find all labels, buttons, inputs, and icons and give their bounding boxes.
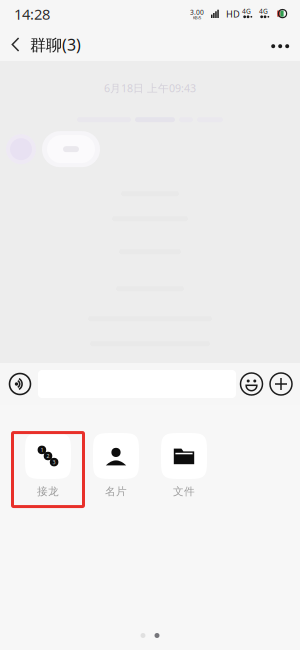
button[interactable]: Voice message: [2, 363, 38, 405]
staticText: 接龙: [37, 485, 59, 498]
staticText: 2: [46, 452, 49, 460]
button[interactable]: More: [267, 363, 295, 405]
button[interactable]: More options: [258, 28, 300, 61]
button[interactable]: 名片: [87, 433, 145, 498]
staticText: 3: [53, 459, 56, 466]
staticText: 文件: [173, 485, 195, 498]
button[interactable]: Emoji: [236, 363, 267, 405]
staticText: 6月18日 上午09:43: [104, 81, 196, 95]
button[interactable]: 1: [19, 433, 77, 498]
button[interactable]: 文件: [155, 433, 213, 498]
staticText: 14:28: [14, 4, 50, 24]
staticText: 群聊(3): [30, 34, 81, 55]
button[interactable]: 群聊(3): [0, 28, 93, 61]
staticText: 1: [40, 446, 43, 453]
staticText: KB/S: [193, 15, 201, 20]
staticText: 4G: [242, 7, 251, 16]
staticText: 4G: [259, 7, 268, 16]
staticText: 名片: [105, 485, 127, 498]
staticText: HD: [226, 8, 240, 20]
staticText: 3.00: [190, 8, 204, 17]
